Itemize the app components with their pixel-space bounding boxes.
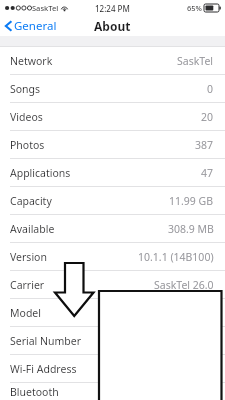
staticText: 20	[201, 110, 214, 124]
staticText: Bluetooth	[10, 385, 59, 399]
staticText: 387	[195, 138, 214, 152]
staticText: SaskTel	[32, 3, 59, 13]
staticText: 47	[201, 166, 214, 180]
staticText: Wi-Fi Address	[10, 362, 77, 376]
staticText: 12:24 PM	[95, 3, 130, 14]
staticText: SaskTel	[177, 54, 214, 68]
button[interactable]: Carrier	[0, 271, 225, 298]
button[interactable]: Serial Number	[0, 327, 225, 354]
staticText: 0	[207, 82, 214, 96]
staticText: Photos	[10, 138, 45, 152]
staticText: Model	[10, 306, 41, 320]
button[interactable]: Videos	[0, 103, 225, 130]
staticText: Network	[10, 54, 53, 68]
staticText: Available	[10, 222, 55, 236]
button[interactable]: Photos	[0, 131, 225, 158]
staticText: Songs	[10, 82, 41, 96]
button[interactable]: General	[0, 16, 63, 36]
staticText: Videos	[10, 110, 43, 124]
staticText: Carrier	[10, 278, 45, 292]
staticText: 11.99 GB	[169, 194, 214, 208]
staticText: 10.1.1 (14B100)	[138, 250, 214, 264]
button[interactable]: Network	[0, 47, 225, 74]
staticText: Version	[10, 250, 47, 264]
button[interactable]: Wi-Fi Address	[0, 355, 225, 382]
staticText: Serial Number	[10, 334, 82, 348]
button[interactable]: Version	[0, 243, 225, 270]
staticText: 65%	[187, 3, 202, 13]
staticText: 308.9 MB	[168, 222, 214, 236]
staticText: Capacity	[10, 194, 52, 208]
button[interactable]: Available	[0, 215, 225, 242]
staticText: About	[94, 18, 131, 34]
staticText: General	[14, 18, 57, 34]
button[interactable]: Model	[0, 299, 225, 326]
staticText: SaskTel 26.0	[154, 278, 214, 292]
button[interactable]: Capacity	[0, 187, 225, 214]
button[interactable]: Bluetooth	[0, 383, 225, 400]
staticText: Applications	[10, 166, 71, 180]
button[interactable]: Applications	[0, 159, 225, 186]
button[interactable]: Songs	[0, 75, 225, 102]
